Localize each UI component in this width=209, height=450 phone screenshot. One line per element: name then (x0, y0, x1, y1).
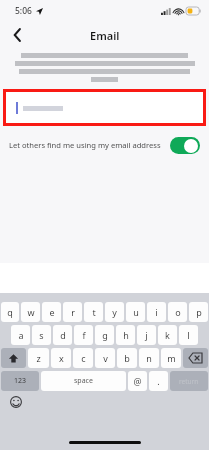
staticText: p (196, 306, 202, 318)
button[interactable]: y (105, 302, 124, 322)
staticText: e (49, 306, 55, 318)
button[interactable]: f (74, 325, 93, 345)
staticText: l (187, 329, 190, 341)
staticText: h (123, 329, 129, 341)
staticText: i (155, 306, 158, 318)
staticText: @ (133, 375, 142, 387)
button[interactable]: Emoji (9, 395, 22, 408)
button[interactable]: Shift (1, 348, 26, 368)
button[interactable]: Let others find me using my email addres… (0, 133, 209, 157)
staticText: 123 (14, 376, 27, 386)
staticText: y (112, 306, 117, 318)
staticText: n (146, 352, 152, 364)
staticText: g (102, 329, 108, 341)
button[interactable]: Back (0, 22, 34, 48)
button[interactable]: k (158, 325, 177, 345)
button[interactable]: v (95, 348, 115, 368)
staticText: z (36, 352, 41, 364)
staticText: u (133, 306, 139, 318)
button[interactable]: u (126, 302, 145, 322)
staticText: t (92, 306, 96, 318)
staticText: 5:06 (15, 5, 32, 17)
button[interactable]: i (147, 302, 166, 322)
button[interactable]: t (84, 302, 103, 322)
button[interactable]: s (32, 325, 51, 345)
button[interactable]: space (41, 371, 126, 391)
staticText: f (82, 329, 86, 341)
button[interactable]: r (63, 302, 82, 322)
button[interactable]: g (95, 325, 114, 345)
staticText: Let others find me using my email addres… (9, 140, 161, 150)
staticText: b (124, 352, 130, 364)
button[interactable]: h (116, 325, 135, 345)
staticText: v (103, 352, 108, 364)
button[interactable]: a (11, 325, 30, 345)
button[interactable]: b (117, 348, 137, 368)
button[interactable]: e (42, 302, 61, 322)
button[interactable]: @ (128, 371, 147, 391)
staticText: Email (90, 28, 120, 43)
button[interactable]: z (28, 348, 49, 368)
staticText: j (145, 329, 148, 341)
staticText: q (7, 306, 13, 318)
button[interactable]: Backspace (183, 348, 208, 368)
button[interactable]: 123 (1, 371, 39, 391)
button[interactable]: j (137, 325, 156, 345)
staticText: space (74, 376, 93, 386)
staticText: return (179, 377, 199, 386)
button[interactable]: m (161, 348, 181, 368)
staticText: a (18, 329, 24, 341)
button[interactable]: n (139, 348, 159, 368)
staticText: m (167, 352, 176, 364)
staticText: x (59, 352, 64, 364)
staticText: s (39, 329, 44, 341)
button[interactable]: x (51, 348, 71, 368)
staticText: c (81, 352, 86, 364)
staticText: . (157, 375, 160, 387)
button[interactable]: d (53, 325, 72, 345)
button[interactable]: q (1, 302, 19, 322)
staticText: o (175, 306, 181, 318)
button[interactable]: . (149, 371, 168, 391)
button[interactable]: o (168, 302, 187, 322)
staticText: w (27, 306, 35, 318)
button[interactable]: l (179, 325, 198, 345)
button[interactable]: return (170, 371, 208, 391)
button[interactable]: p (189, 302, 208, 322)
staticText: d (60, 329, 66, 341)
staticText: r (71, 306, 75, 318)
staticText: k (165, 329, 170, 341)
button[interactable] (6, 92, 203, 123)
button[interactable]: w (21, 302, 40, 322)
button[interactable]: c (73, 348, 93, 368)
